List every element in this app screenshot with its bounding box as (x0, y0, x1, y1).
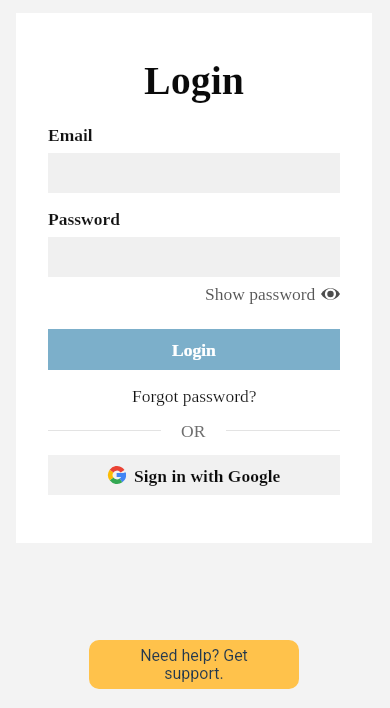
other: Show password (321, 287, 340, 301)
staticText: Login (16, 58, 372, 102)
staticText: Forgot password? (132, 386, 257, 405)
staticText: Password (48, 209, 120, 228)
staticText: Sign in with Google (134, 466, 281, 485)
button[interactable]: Login (48, 329, 340, 370)
staticText: Need help? Get support. (136, 646, 252, 683)
button[interactable]: Show password (16, 284, 340, 303)
button[interactable]: Need help? Get support. (89, 640, 299, 689)
staticText: OR (181, 421, 206, 440)
staticText: Show password (205, 284, 316, 303)
button[interactable]: Forgot password? (16, 384, 372, 406)
staticText: Login (172, 340, 216, 359)
staticText: Email (48, 125, 93, 144)
button[interactable]: Sign in with Google (48, 455, 340, 495)
